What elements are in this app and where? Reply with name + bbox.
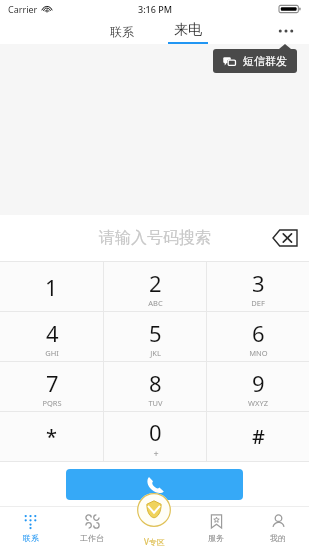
staticText: ABC [148, 298, 163, 308]
staticText: GHI [45, 348, 59, 358]
staticText: 3:16 PM [138, 3, 172, 15]
staticText: 联系 [110, 24, 134, 39]
button[interactable]: # [207, 412, 309, 461]
button[interactable]: 联系 [0, 506, 61, 550]
staticText: 服务 [208, 533, 224, 543]
staticText: 请输入号码搜索 [99, 228, 211, 248]
staticText: MNO [249, 348, 268, 358]
button[interactable]: Backspace [269, 224, 301, 252]
staticText: TUV [148, 398, 163, 408]
staticText: 联系 [23, 533, 39, 543]
staticText: 2 [149, 268, 162, 298]
button[interactable]: More options [271, 18, 301, 44]
staticText: V专区 [144, 536, 165, 547]
button[interactable]: 工作台 [61, 506, 123, 550]
staticText: 来电 [174, 21, 202, 39]
button[interactable]: Call [66, 469, 243, 500]
button[interactable]: 5 [104, 312, 206, 361]
staticText: * [46, 423, 57, 450]
button[interactable]: 来电 [160, 18, 216, 44]
staticText: 3 [252, 268, 265, 298]
button[interactable]: 7 [0, 362, 103, 411]
staticText: DEF [251, 298, 265, 308]
button[interactable]: 3 [207, 262, 309, 311]
staticText: WXYZ [248, 398, 268, 408]
button[interactable]: 我的 [247, 506, 309, 550]
button[interactable]: 2 [104, 262, 206, 311]
button[interactable]: 联系 [94, 18, 150, 44]
staticText: 4 [46, 318, 59, 348]
staticText: 我的 [270, 533, 286, 543]
button[interactable]: * [0, 412, 103, 461]
staticText: 1 [45, 272, 58, 302]
staticText: Carrier [8, 3, 38, 15]
button[interactable]: V专区 [123, 506, 185, 550]
button[interactable]: 短信群发 [213, 49, 297, 73]
staticText: 0 [149, 417, 162, 447]
button[interactable]: 4 [0, 312, 103, 361]
button[interactable]: 0 [104, 412, 206, 461]
staticText: 6 [252, 318, 265, 348]
button[interactable]: 1 [0, 262, 103, 311]
staticText: JKL [150, 348, 161, 358]
staticText: 8 [149, 368, 162, 398]
button[interactable]: 服务 [185, 506, 247, 550]
staticText: 5 [149, 318, 162, 348]
staticText: + [153, 447, 159, 459]
staticText: 7 [46, 368, 59, 398]
staticText: 短信群发 [243, 54, 287, 68]
button[interactable]: 8 [104, 362, 206, 411]
staticText: 9 [252, 368, 265, 398]
staticText: 工作台 [80, 533, 104, 543]
button[interactable]: 9 [207, 362, 309, 411]
button[interactable]: 6 [207, 312, 309, 361]
staticText: PQRS [42, 398, 62, 408]
staticText: # [252, 423, 265, 450]
